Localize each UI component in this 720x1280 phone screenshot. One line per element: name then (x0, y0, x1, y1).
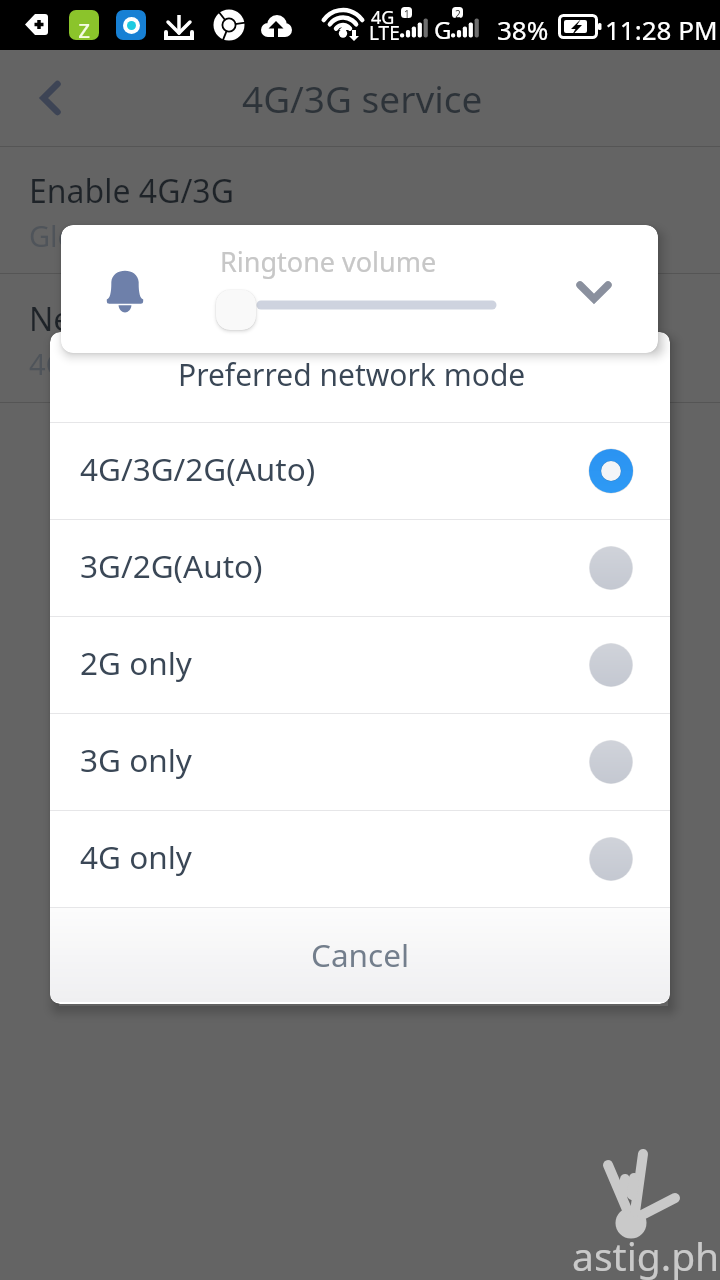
button[interactable]: 4G only (50, 811, 670, 907)
staticText: Enable 4G/3G (29, 169, 234, 213)
button[interactable]: 3G/2G(Auto) (50, 520, 670, 616)
staticText: Preferred network mode (178, 354, 526, 395)
staticText: Ringtone volume (220, 243, 437, 280)
staticText: G (434, 13, 452, 46)
button[interactable]: Enable 4G/3G (0, 147, 720, 273)
staticText: Cancel (311, 933, 410, 976)
staticText: astig.ph (572, 1229, 720, 1280)
staticText: 4G (371, 5, 395, 30)
staticText: 4G/3G/2G(Auto) (29, 344, 246, 383)
staticText: 4G/3G service (242, 73, 483, 123)
button[interactable]: Cancel (50, 908, 670, 1002)
staticText: Network mode (29, 297, 254, 341)
staticText: 4G/3G/2G(Auto) (80, 447, 316, 490)
staticText: LTE (369, 20, 400, 46)
staticText: 4G only (80, 835, 192, 878)
staticText: 1 (404, 7, 410, 18)
button[interactable]: 3G only (50, 714, 670, 810)
button[interactable]: Expand volume panel (563, 261, 625, 323)
staticText: 3G/2G(Auto) (80, 544, 263, 587)
button[interactable]: 4G/3G/2G(Auto) (50, 423, 670, 519)
staticText: 2G only (80, 641, 192, 684)
staticText: z (78, 10, 91, 40)
staticText: 2 (455, 7, 461, 18)
button[interactable]: Back (18, 68, 78, 128)
button[interactable]: Ringtone volume slider (216, 290, 256, 330)
button[interactable]: Network mode (0, 274, 720, 402)
staticText: Globe Telecom PH (29, 216, 277, 255)
staticText: 38% (497, 12, 549, 47)
staticText: 11:28 PM (605, 12, 718, 47)
staticText: 3G only (80, 738, 192, 781)
button[interactable]: 2G only (50, 617, 670, 713)
